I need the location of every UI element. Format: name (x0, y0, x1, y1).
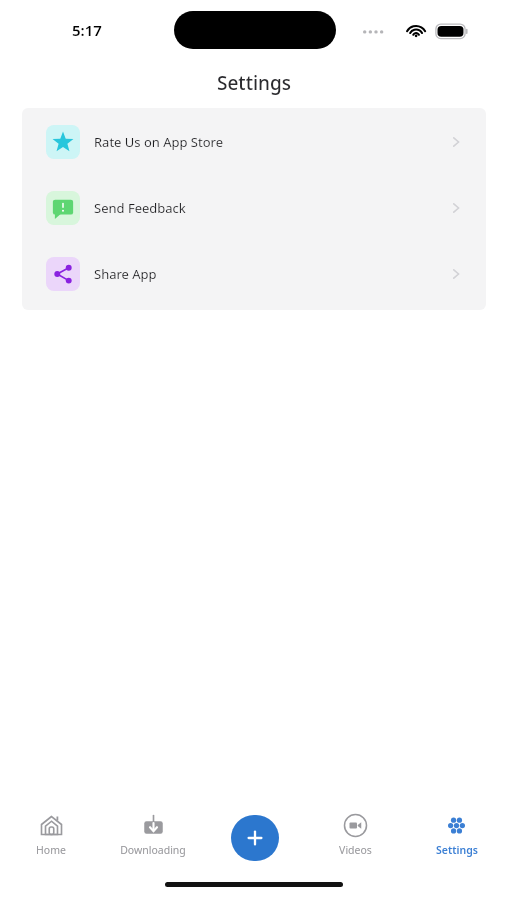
staticText: Settings (217, 70, 291, 96)
button[interactable]: Downloading (102, 808, 204, 866)
staticText: Settings (436, 843, 478, 857)
button[interactable]: Add (231, 815, 279, 861)
staticText: Send Feedback (94, 199, 186, 217)
button[interactable]: Settings (406, 808, 507, 866)
button[interactable]: Home (0, 808, 102, 866)
staticText: Videos (339, 843, 372, 857)
staticText: 5:17 (72, 20, 102, 40)
staticText: Home (36, 843, 66, 857)
button[interactable]: Share App (22, 257, 486, 291)
button[interactable]: Rate Us on App Store (22, 125, 486, 159)
button[interactable]: Send Feedback (22, 191, 486, 225)
staticText: Downloading (120, 843, 186, 857)
staticText: Rate Us on App Store (94, 133, 223, 151)
button[interactable]: Videos (305, 808, 406, 866)
staticText: Share App (94, 265, 157, 283)
